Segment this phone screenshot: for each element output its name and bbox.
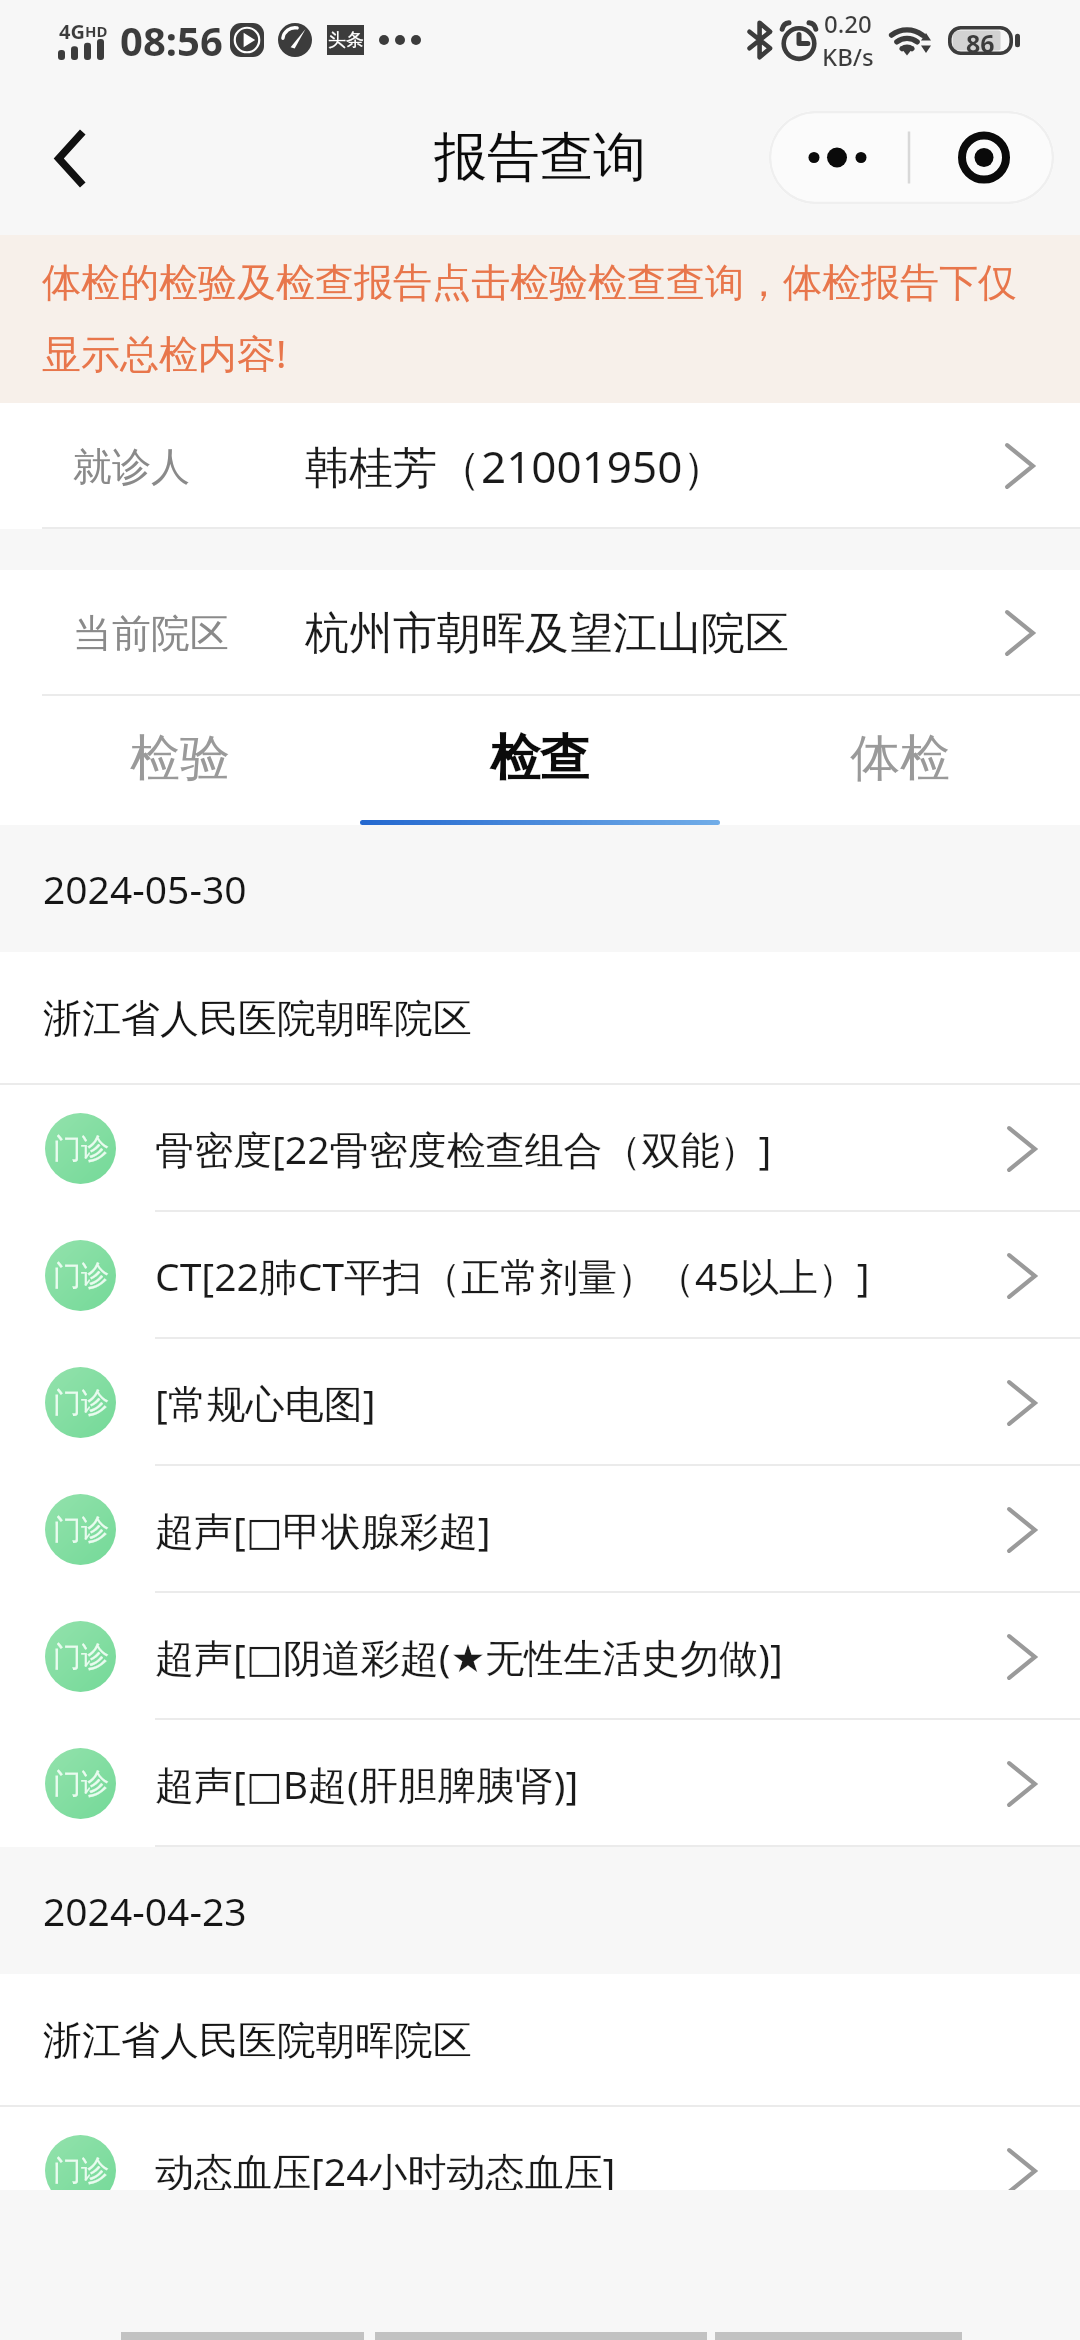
button[interactable]: Back xyxy=(24,113,114,203)
staticText: 2024-04-23 xyxy=(43,1884,247,1937)
staticText: 超声[□阴道彩超(★无性生活史勿做)] xyxy=(155,1630,783,1683)
button[interactable]: 体检 xyxy=(720,696,1080,825)
staticText: 韩桂芳（21001950） xyxy=(305,436,727,496)
staticText: 浙江省人民医院朝晖院区 xyxy=(43,2016,472,2065)
button[interactable]: More and close xyxy=(769,111,1054,204)
staticText: 门诊 xyxy=(53,1131,109,1166)
staticText: 检查 xyxy=(490,727,590,790)
staticText: CT[22肺CT平扫（正常剂量）（45以上）] xyxy=(155,1249,870,1302)
staticText: 门诊 xyxy=(53,1639,109,1674)
staticText: 就诊人 xyxy=(73,442,190,491)
staticText: 门诊 xyxy=(53,1512,109,1547)
button[interactable]: 门诊 xyxy=(0,1085,1080,1212)
button[interactable]: 门诊 xyxy=(0,1212,1080,1339)
staticText: 体检的检验及检查报告点击检验检查查询，体检报告下仅显示总检内容! xyxy=(42,258,1020,380)
staticText: 报告查询 xyxy=(434,124,646,191)
staticText: [常规心电图] xyxy=(155,1376,376,1429)
staticText: 超声[□甲状腺彩超] xyxy=(155,1503,491,1556)
button[interactable]: 就诊人 xyxy=(0,403,1080,529)
staticText: 门诊 xyxy=(53,1258,109,1293)
staticText: 86 xyxy=(966,26,995,55)
staticText: 杭州市朝晖及望江山院区 xyxy=(305,606,789,661)
staticText: 体检 xyxy=(850,727,950,790)
button[interactable]: 门诊 xyxy=(0,1593,1080,1720)
staticText: 超声[□B超(肝胆脾胰肾)] xyxy=(155,1757,579,1810)
button[interactable]: 门诊 xyxy=(0,1720,1080,1847)
staticText: 门诊 xyxy=(53,2153,109,2188)
staticText: HD xyxy=(85,21,108,41)
staticText: 当前院区 xyxy=(73,609,229,658)
staticText: 浙江省人民医院朝晖院区 xyxy=(43,994,472,1043)
staticText: 0.20 xyxy=(824,7,872,40)
button[interactable]: 门诊 xyxy=(0,2107,1080,2234)
staticText: 08:56 xyxy=(120,13,223,67)
staticText: 检验 xyxy=(130,727,230,790)
button[interactable]: 当前院区 xyxy=(0,570,1080,696)
staticText: 头条 xyxy=(328,29,364,52)
button[interactable]: 门诊 xyxy=(0,1466,1080,1593)
staticText: 骨密度[22骨密度检查组合（双能）] xyxy=(155,1122,772,1175)
staticText: 门诊 xyxy=(53,1766,109,1801)
staticText: 动态血压[24小时动态血压] xyxy=(155,2144,616,2197)
button[interactable]: 门诊 xyxy=(0,1339,1080,1466)
staticText: 门诊 xyxy=(53,1385,109,1420)
button[interactable]: 检验 xyxy=(0,696,360,825)
button[interactable]: 检查 xyxy=(360,696,720,825)
staticText: KB/s xyxy=(822,40,874,73)
staticText: 4G xyxy=(59,18,85,45)
staticText: 2024-05-30 xyxy=(43,862,247,915)
